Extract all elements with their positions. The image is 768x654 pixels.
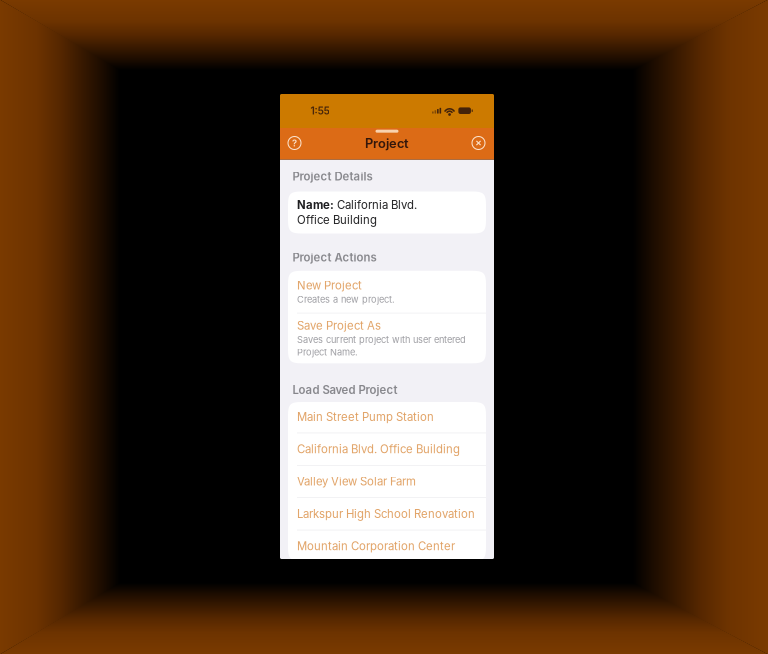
staticText: Saves current project with user entered bbox=[297, 334, 466, 345]
staticText: 1:55 bbox=[310, 105, 329, 117]
staticText: Valley View Solar Farm bbox=[297, 475, 416, 488]
staticText: New Project bbox=[297, 279, 362, 292]
button[interactable]: California Blvd. Office Building bbox=[288, 433, 486, 465]
staticText: ? bbox=[292, 137, 297, 149]
button[interactable]: Larkspur High School Renovation bbox=[288, 498, 486, 530]
staticText: Larkspur High School Renovation bbox=[297, 507, 475, 521]
staticText: California Blvd. Office Building bbox=[297, 442, 460, 456]
staticText: Main Street Pump Station bbox=[297, 410, 434, 424]
staticText: Save Project As bbox=[297, 319, 381, 332]
staticText: Creates a new project. bbox=[297, 294, 395, 305]
button[interactable]: Mountain Corporation Center bbox=[288, 530, 486, 562]
staticText: Project Details bbox=[292, 170, 372, 183]
staticText: Project Actions bbox=[292, 251, 376, 264]
staticText: Project Name. bbox=[297, 347, 358, 358]
button[interactable]: Save Project As bbox=[288, 313, 486, 363]
button[interactable]: Valley View Solar Farm bbox=[288, 466, 486, 497]
button[interactable]: Main Street Pump Station bbox=[288, 401, 486, 433]
button[interactable]: Close bbox=[472, 136, 485, 149]
staticText: Mountain Corporation Center bbox=[297, 539, 455, 553]
staticText: Office Building bbox=[297, 213, 377, 227]
button[interactable]: Help bbox=[288, 136, 301, 149]
staticText: Project bbox=[365, 136, 409, 151]
staticText: Name: California Blvd. bbox=[297, 198, 417, 212]
staticText: Load Saved Project bbox=[292, 383, 397, 397]
button[interactable]: New Project bbox=[288, 271, 486, 313]
